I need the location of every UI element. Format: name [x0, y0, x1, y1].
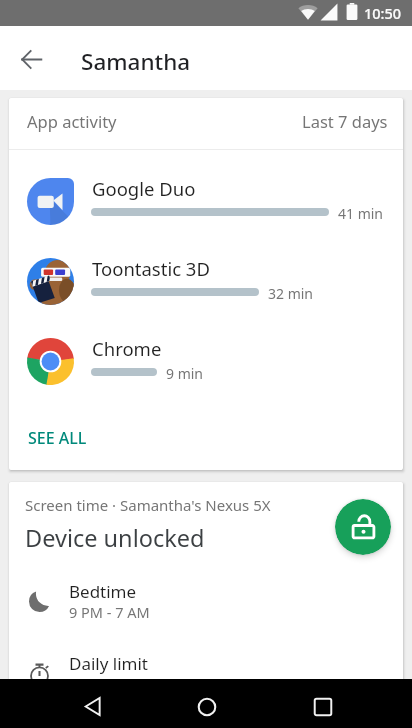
button[interactable]: Back: [10, 38, 52, 80]
button[interactable]: Chrome: [9, 321, 403, 401]
button[interactable]: Back: [46, 679, 138, 728]
button[interactable]: Home: [161, 679, 253, 728]
staticText: Toontastic 3D: [92, 256, 210, 281]
staticText: 9 PM - 7 AM: [69, 602, 150, 622]
button[interactable]: Google Duo: [9, 161, 403, 241]
staticText: 32 min: [268, 284, 314, 303]
staticText: 9 min: [166, 364, 204, 383]
staticText: Samantha: [81, 46, 191, 77]
button[interactable]: Unlock device: [335, 499, 391, 555]
button[interactable]: Toontastic 3D: [9, 241, 403, 321]
staticText: Last 7 days: [302, 110, 388, 132]
staticText: Bedtime: [69, 580, 137, 603]
staticText: Screen time · Samantha's Nexus 5X: [25, 495, 271, 515]
button[interactable]: Daily limit: [9, 639, 403, 692]
staticText: Daily limit: [69, 652, 148, 675]
staticText: 10:50: [364, 3, 402, 23]
staticText: Chrome: [92, 336, 162, 361]
staticText: 41 min: [338, 204, 384, 223]
button[interactable]: Bedtime: [9, 567, 403, 631]
staticText: Google Duo: [92, 176, 196, 201]
staticText: App activity: [27, 110, 117, 132]
button[interactable]: SEE ALL: [9, 403, 403, 470]
staticText: Device unlocked: [25, 522, 205, 554]
staticText: SEE ALL: [28, 427, 87, 449]
button[interactable]: Recent apps: [277, 679, 369, 728]
